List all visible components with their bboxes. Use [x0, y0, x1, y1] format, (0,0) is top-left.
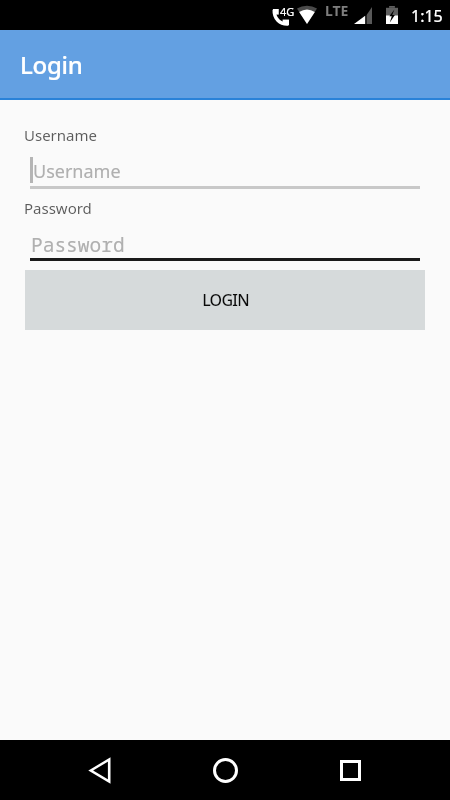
staticText: Password: [31, 231, 125, 258]
staticText: 1:15: [411, 5, 443, 27]
button[interactable]: Username: [30, 156, 420, 189]
button[interactable]: Password: [30, 229, 420, 261]
button[interactable]: Home: [150, 740, 300, 800]
button[interactable]: Recents: [300, 740, 450, 800]
button[interactable]: Back: [0, 740, 150, 800]
staticText: LOGIN: [202, 289, 249, 311]
staticText: Username: [24, 125, 97, 145]
staticText: Password: [24, 198, 92, 218]
button[interactable]: LOGIN: [25, 270, 425, 330]
staticText: LTE: [325, 1, 349, 20]
staticText: 4G: [280, 4, 295, 19]
staticText: Username: [33, 159, 121, 184]
staticText: Login: [20, 48, 83, 81]
